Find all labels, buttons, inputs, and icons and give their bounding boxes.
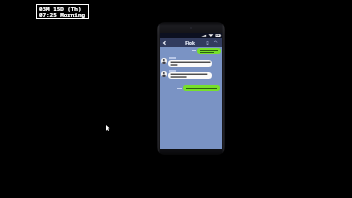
staticText: 07:25 Morning <box>39 11 85 19</box>
button[interactable] <box>168 60 212 67</box>
staticText: 03M 15D (Th) <box>39 5 82 13</box>
staticText: Fjoka <box>184 40 196 45</box>
button[interactable]: Contacts <box>204 38 211 47</box>
button[interactable] <box>197 48 221 54</box>
button[interactable]: More options <box>212 38 219 47</box>
button[interactable] <box>168 72 212 79</box>
button[interactable]: Back <box>161 38 167 47</box>
button[interactable] <box>183 85 220 91</box>
